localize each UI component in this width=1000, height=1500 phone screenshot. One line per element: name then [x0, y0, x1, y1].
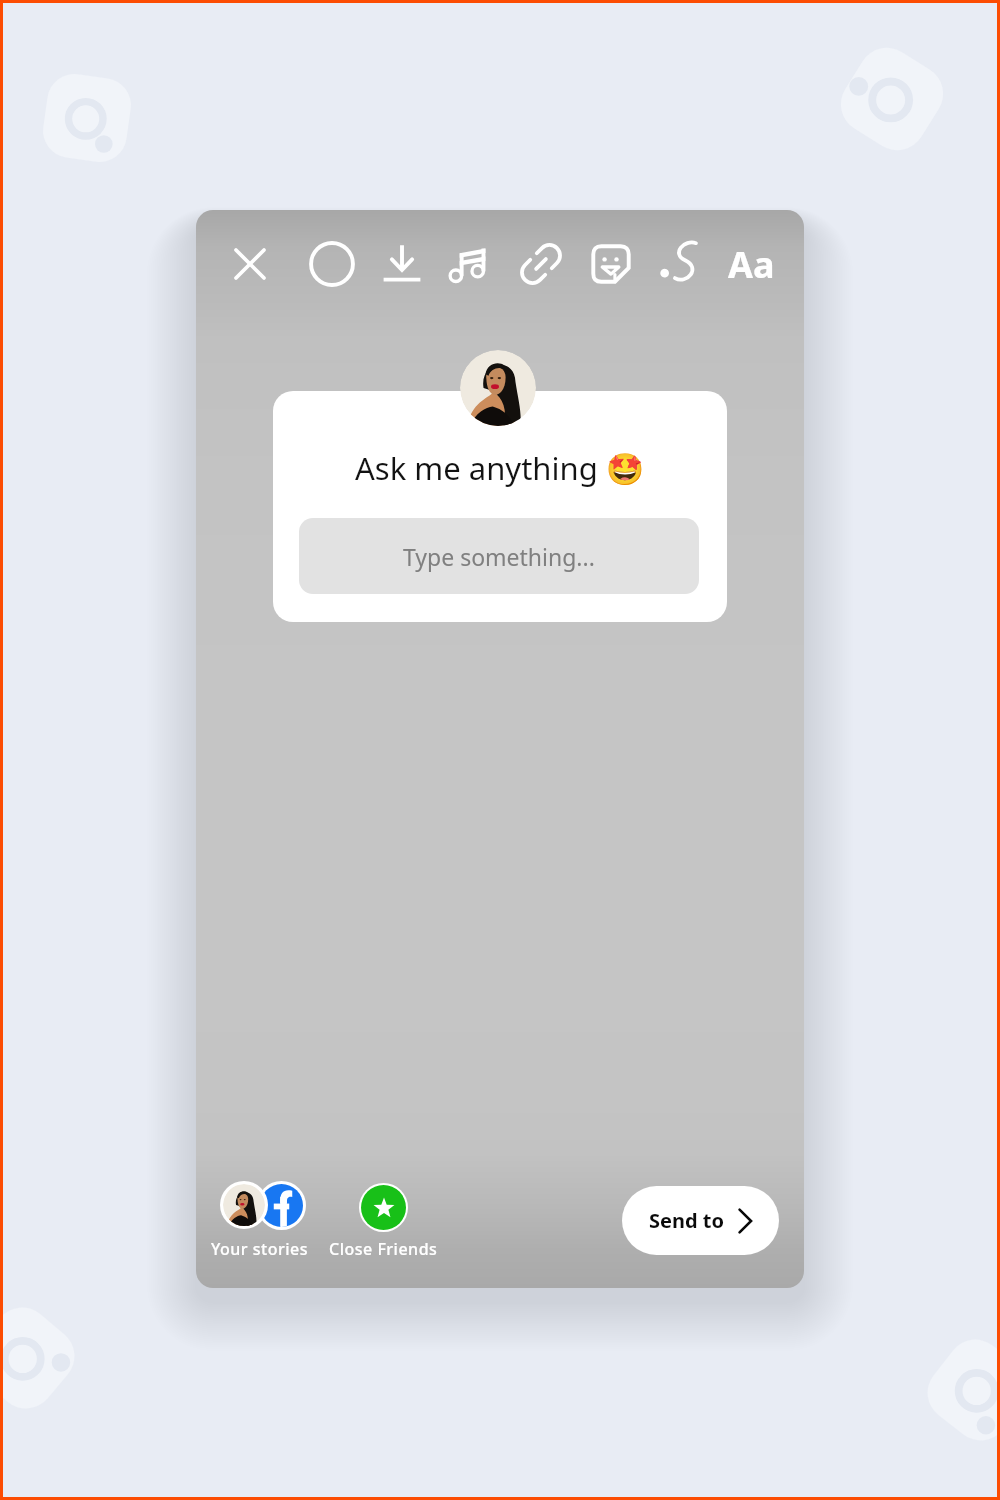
button[interactable]: Type something... — [299, 518, 699, 594]
button[interactable]: Close Friends — [323, 1178, 443, 1260]
button[interactable]: Text — [724, 237, 778, 291]
staticText: Close Friends — [329, 1238, 438, 1260]
staticText: Your stories — [211, 1238, 309, 1260]
staticText: Aa — [728, 240, 775, 289]
button[interactable]: Close — [223, 237, 277, 291]
button[interactable]: Stickers — [584, 237, 638, 291]
button[interactable]: Download — [375, 237, 429, 291]
button[interactable]: Music — [442, 237, 496, 291]
button[interactable]: Camera roll — [305, 237, 359, 291]
staticText: Send to — [649, 1207, 724, 1234]
staticText: Type something... — [403, 541, 595, 572]
staticText: Ask me anything 🤩 — [355, 447, 645, 489]
button[interactable]: Draw — [654, 237, 708, 291]
button[interactable]: Send to — [622, 1186, 779, 1255]
button[interactable]: Link — [514, 237, 568, 291]
button[interactable]: Your stories — [196, 1178, 324, 1260]
